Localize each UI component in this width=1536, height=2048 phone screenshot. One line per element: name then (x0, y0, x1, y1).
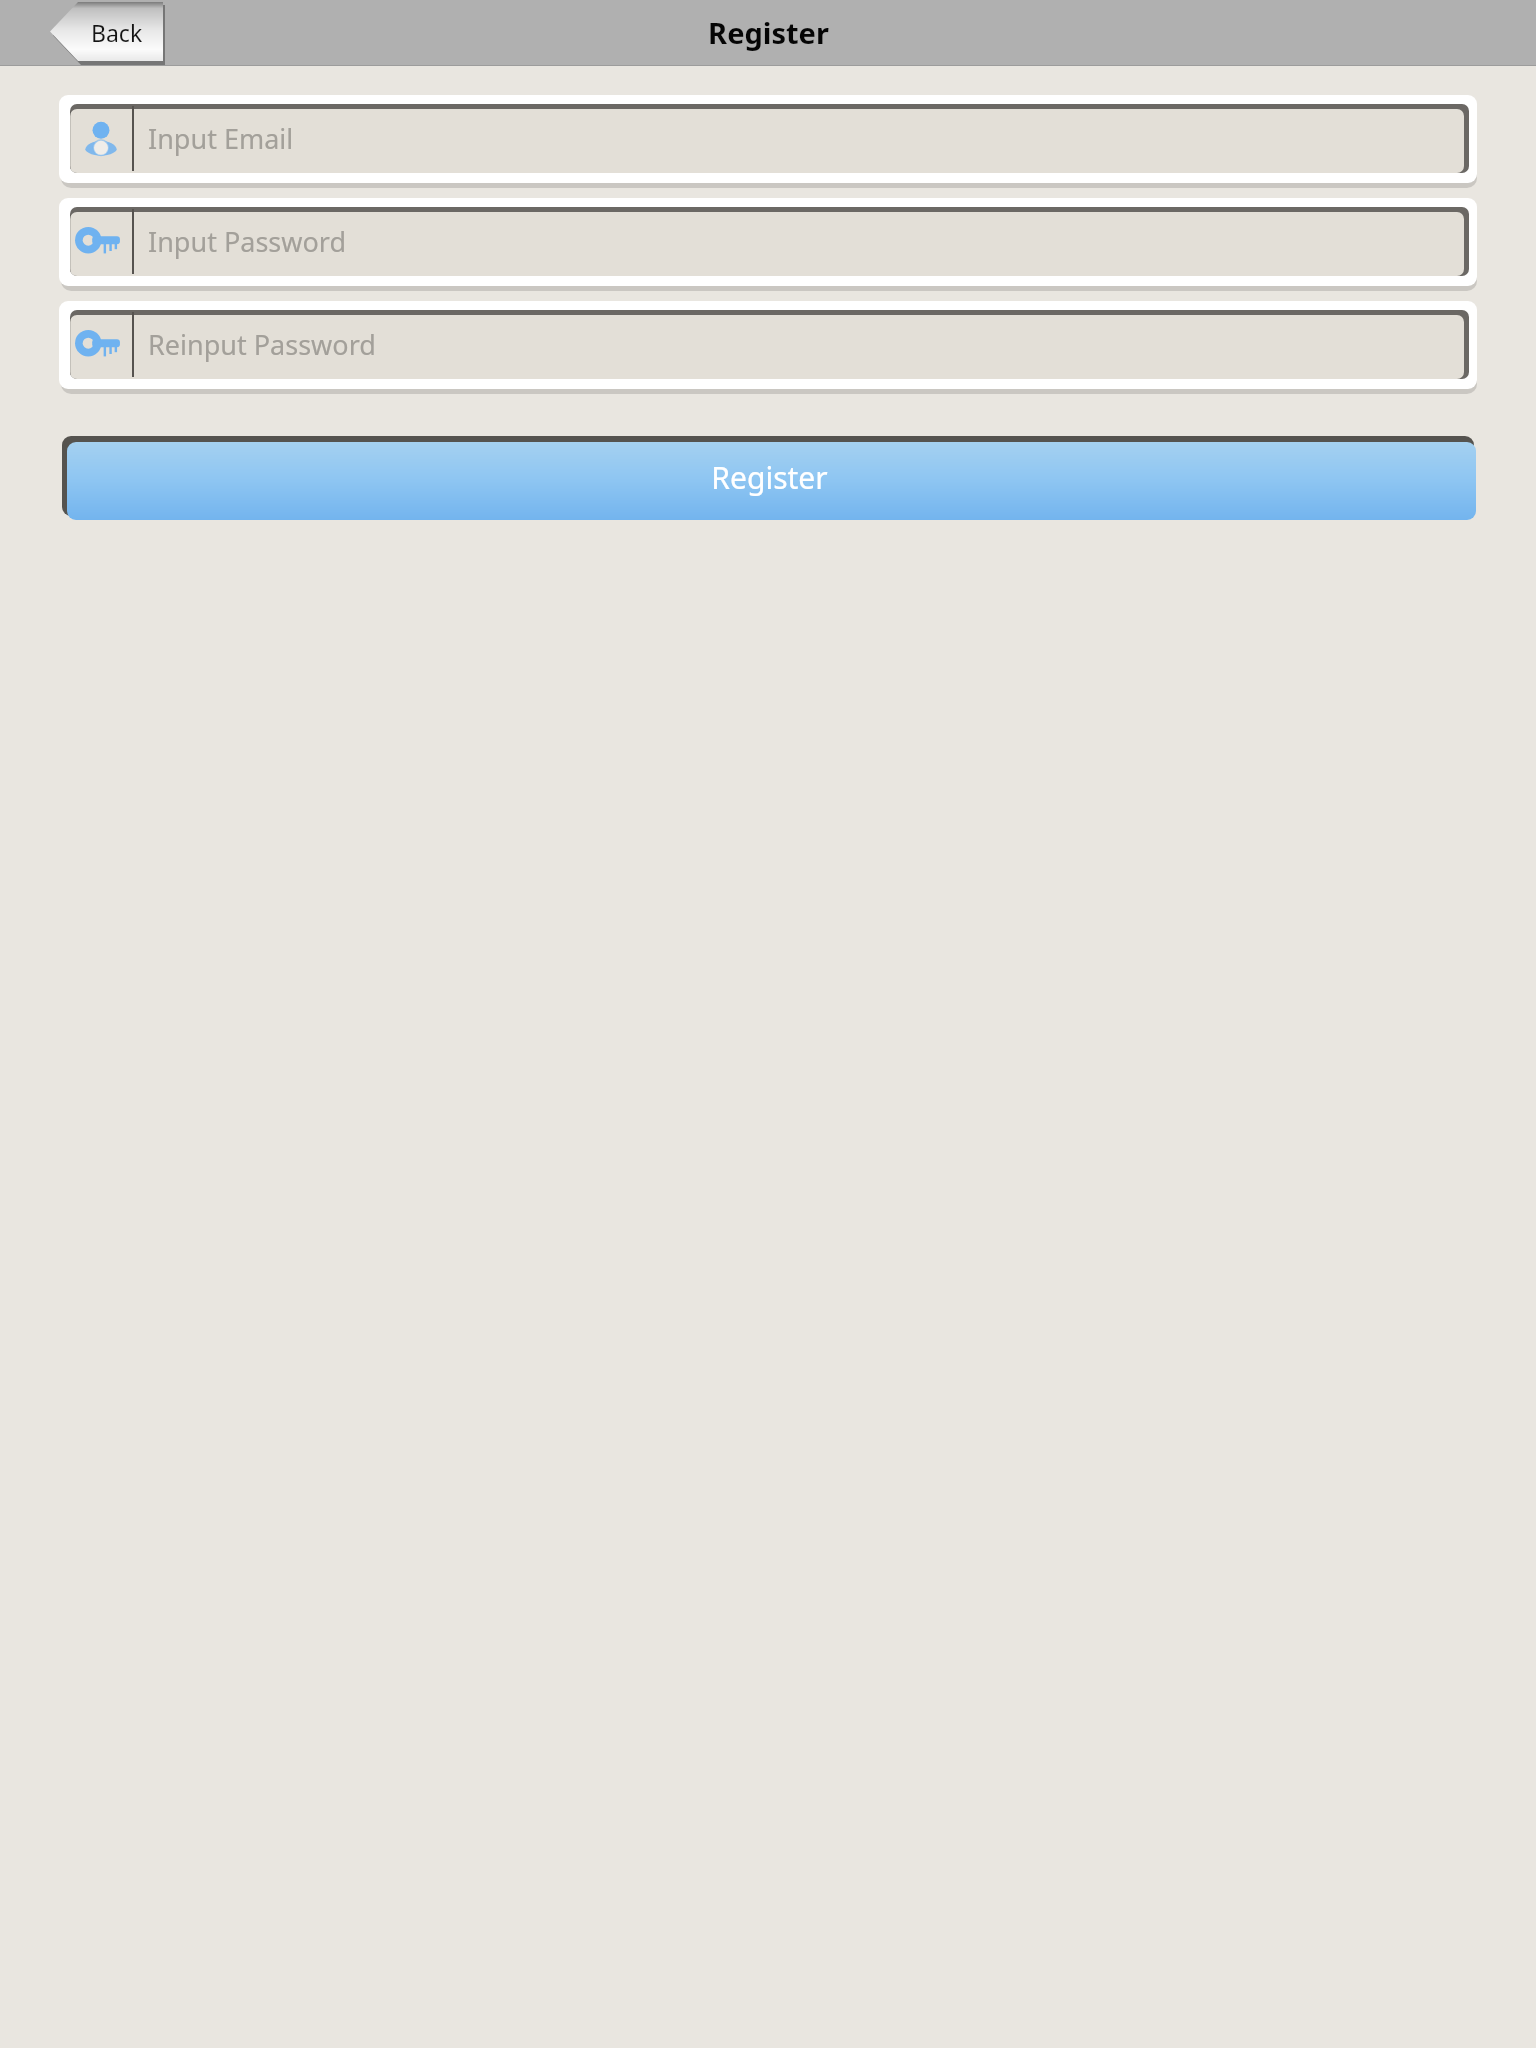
staticText: Input Email (148, 120, 294, 157)
button[interactable]: Back (50, 2, 165, 65)
staticText: Reinput Password (148, 326, 376, 363)
staticText: Register (708, 13, 829, 52)
other: Password (79, 227, 123, 257)
button[interactable]: Password (59, 198, 1477, 289)
staticText: Back (91, 17, 143, 48)
other: Password (79, 330, 123, 360)
staticText: Register (711, 457, 828, 498)
staticText: Input Password (148, 223, 347, 260)
other: User (83, 121, 119, 157)
button[interactable]: User (59, 95, 1477, 186)
button[interactable]: Register (62, 436, 1476, 520)
button[interactable]: Password (59, 301, 1477, 392)
